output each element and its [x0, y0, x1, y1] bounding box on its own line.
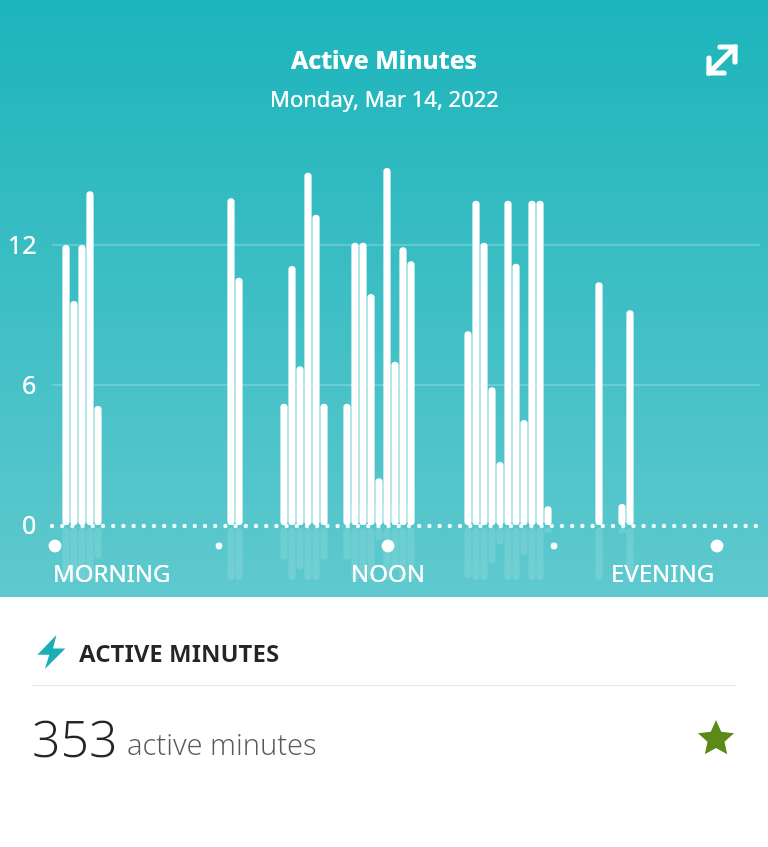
- staticText: 353: [32, 704, 118, 772]
- staticText: NOON: [351, 556, 425, 589]
- button[interactable]: 353: [0, 686, 768, 788]
- staticText: active minutes: [127, 724, 317, 763]
- staticText: 12: [8, 227, 37, 261]
- staticText: 0: [22, 507, 37, 541]
- staticText: ACTIVE MINUTES: [79, 636, 280, 669]
- staticText: EVENING: [611, 556, 715, 589]
- staticText: Monday, Mar 14, 2022: [270, 83, 499, 113]
- button[interactable]: ACTIVE MINUTES: [0, 597, 768, 685]
- staticText: 6: [22, 367, 37, 401]
- button[interactable]: Expand chart: [694, 32, 750, 88]
- other: Goal achieved: [694, 716, 738, 760]
- staticText: MORNING: [53, 556, 171, 589]
- staticText: Active Minutes: [291, 42, 478, 76]
